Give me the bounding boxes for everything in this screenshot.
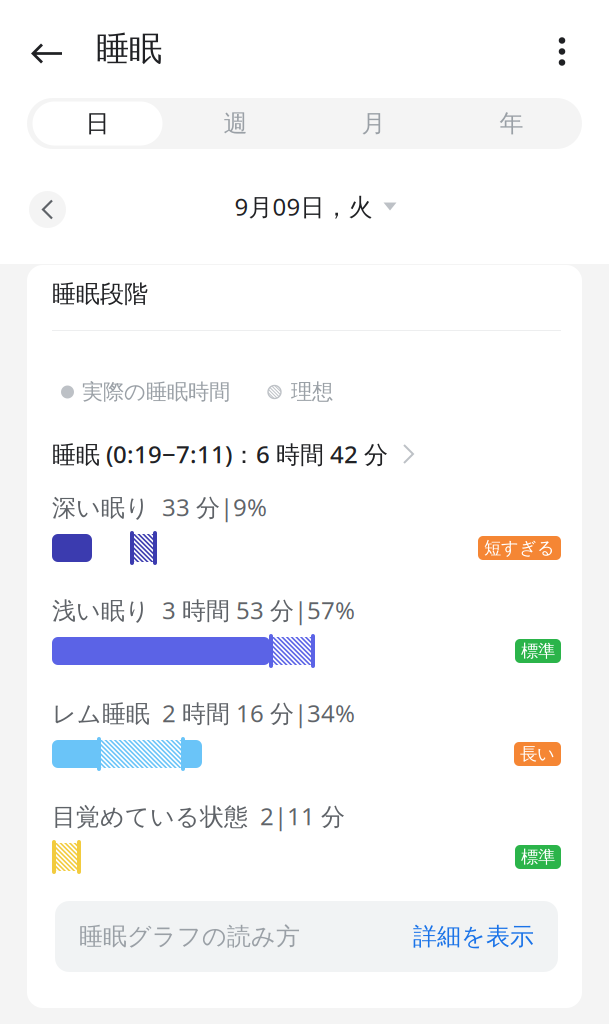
button[interactable]: 睡眠グラフの読み方 [55,901,558,972]
button[interactable]: Back [0,16,96,81]
button[interactable]: 9月09日，火 [204,181,404,232]
staticText: 理想 [291,379,333,405]
button[interactable]: 年 [442,98,580,149]
staticText: 実際の睡眠時間 [82,379,230,405]
staticText: 深い眠り 33 分|9% [52,491,267,523]
staticText: 睡眠 [96,28,162,69]
staticText: 睡眠グラフの読み方 [79,922,300,951]
staticText: 詳細を表示 [413,922,534,951]
staticText: 週 [223,109,247,138]
staticText: 9月09日，火 [234,191,372,222]
staticText: 年 [499,109,523,138]
staticText: 月 [361,109,385,138]
button[interactable]: More options [539,23,609,74]
staticText: 標準 [521,846,555,868]
staticText: 日 [85,109,109,138]
button[interactable]: 週 [166,98,304,149]
staticText: 標準 [521,640,555,662]
button[interactable]: 睡眠 (0:19−7:11)：6 時間 42 分 [52,441,561,467]
staticText: 長い [520,743,555,765]
staticText: 目覚めている状態 2|11 分 [52,800,345,832]
staticText: 短すぎる [484,537,555,559]
staticText: 睡眠 (0:19−7:11)：6 時間 42 分 [52,438,388,470]
staticText: 睡眠段階 [52,279,148,309]
staticText: 浅い眠り 3 時間 53 分|57% [52,594,355,626]
button[interactable]: Previous day [29,185,66,228]
button[interactable]: 月 [304,98,442,149]
staticText: レム睡眠 2 時間 16 分|34% [52,697,355,729]
button[interactable]: 日 [28,98,166,149]
